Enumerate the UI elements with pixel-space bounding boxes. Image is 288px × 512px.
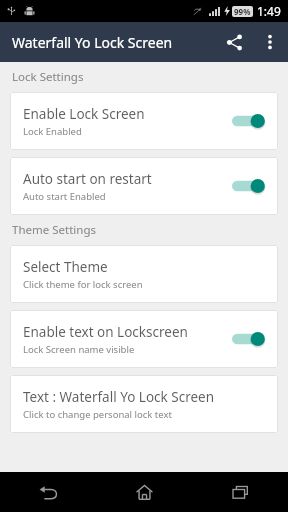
- button[interactable]: Share: [214, 22, 254, 62]
- staticText: Enable Lock Screen: [23, 105, 145, 123]
- staticText: Theme Settings: [12, 222, 96, 238]
- staticText: Enable text on Lockscreen: [23, 323, 188, 341]
- button[interactable]: Home: [96, 472, 192, 512]
- staticText: Auto start Enabled: [23, 190, 106, 203]
- staticText: Text : Waterfall Yo Lock Screen: [23, 388, 215, 406]
- staticText: Lock Enabled: [23, 125, 82, 138]
- staticText: Click theme for lock screen: [23, 278, 143, 291]
- button[interactable]: Toggle: [232, 174, 268, 198]
- button[interactable]: Auto start on restart: [10, 157, 278, 215]
- button[interactable]: Back: [0, 472, 96, 512]
- staticText: Lock Screen name visible: [23, 343, 135, 356]
- staticText: Waterfall Yo Lock Screen: [12, 33, 173, 52]
- button[interactable]: Toggle: [232, 327, 268, 351]
- button[interactable]: Recent apps: [192, 472, 288, 512]
- button[interactable]: Select Theme: [10, 245, 278, 303]
- staticText: 99%: [234, 6, 251, 17]
- staticText: Select Theme: [23, 258, 108, 276]
- button[interactable]: More options: [254, 26, 286, 58]
- staticText: Click to change personal lock text: [23, 408, 172, 421]
- button[interactable]: Text : Waterfall Yo Lock Screen: [10, 375, 278, 433]
- button[interactable]: Toggle: [232, 109, 268, 133]
- staticText: Lock Settings: [12, 69, 84, 85]
- button[interactable]: Enable Lock Screen: [10, 92, 278, 150]
- button[interactable]: Enable text on Lockscreen: [10, 310, 278, 368]
- staticText: Auto start on restart: [23, 170, 152, 188]
- staticText: 1:49: [257, 3, 281, 19]
